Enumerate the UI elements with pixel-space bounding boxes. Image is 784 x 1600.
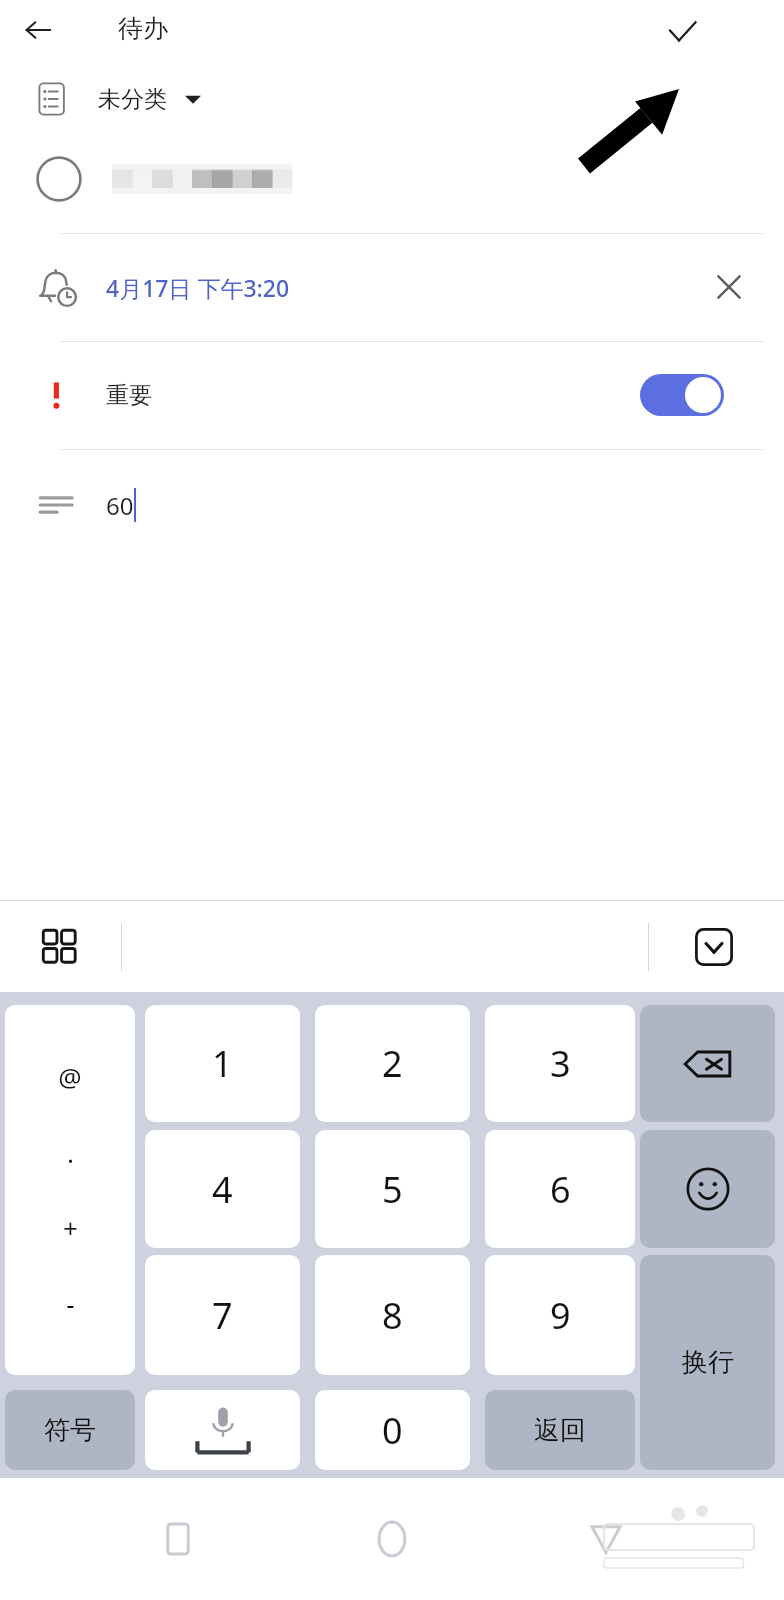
button[interactable]: Recents (150, 1511, 206, 1567)
button[interactable]: 4 (145, 1130, 300, 1248)
button[interactable]: @ (5, 1005, 135, 1375)
staticText: 8 (382, 1291, 403, 1340)
staticText: 换行 (682, 1346, 734, 1379)
staticText: 9 (550, 1291, 571, 1340)
staticText: 未分类 (98, 85, 167, 114)
button[interactable]: 未分类 (0, 60, 784, 138)
staticText: 7 (212, 1291, 233, 1340)
staticText: + (63, 1210, 78, 1245)
staticText: 6 (550, 1165, 571, 1214)
staticText: - (66, 1286, 75, 1321)
button[interactable] (0, 138, 784, 220)
button[interactable]: 0 (315, 1390, 470, 1470)
staticText: 1 (212, 1039, 233, 1088)
staticText: 符号 (44, 1414, 96, 1447)
button[interactable]: Backspace (640, 1005, 775, 1122)
button[interactable]: Clear reminder (706, 264, 752, 310)
button[interactable]: 换行 (640, 1255, 775, 1470)
button[interactable]: 3 (485, 1005, 635, 1122)
staticText: 待办 (118, 13, 168, 44)
button[interactable]: 1 (145, 1005, 300, 1122)
button[interactable]: 返回 (485, 1390, 635, 1470)
staticText: 重要 (106, 381, 152, 410)
staticText: @ (58, 1059, 82, 1094)
button[interactable]: 8 (315, 1255, 470, 1375)
button[interactable]: Important toggle, on (640, 374, 724, 416)
staticText: 4月17日 下午3:20 (106, 272, 290, 303)
button[interactable]: 重要 (0, 354, 784, 436)
button[interactable]: 2 (315, 1005, 470, 1122)
staticText: 2 (382, 1039, 403, 1088)
button[interactable]: Home (364, 1511, 420, 1567)
button[interactable]: 4月17日 下午3:20 (0, 246, 784, 328)
staticText: 4 (212, 1165, 233, 1214)
button[interactable]: Emoji (640, 1130, 775, 1248)
button[interactable]: Hide keyboard (686, 919, 742, 975)
button[interactable]: Keyboard layouts (34, 921, 86, 973)
button[interactable]: 9 (485, 1255, 635, 1375)
staticText: 3 (550, 1039, 571, 1088)
button[interactable]: 6 (485, 1130, 635, 1248)
staticText: . (67, 1135, 74, 1170)
button[interactable]: 符号 (5, 1390, 135, 1470)
staticText: 0 (382, 1406, 403, 1455)
staticText: 60 (106, 489, 134, 522)
button[interactable]: Back (578, 1511, 634, 1567)
button[interactable]: Space (145, 1390, 300, 1470)
button[interactable]: 5 (315, 1130, 470, 1248)
staticText: 返回 (534, 1414, 586, 1447)
button[interactable]: Back (16, 8, 60, 52)
button[interactable]: 60 (0, 462, 784, 548)
staticText: 5 (382, 1165, 403, 1214)
button[interactable]: 7 (145, 1255, 300, 1375)
button[interactable]: Done (656, 6, 708, 58)
